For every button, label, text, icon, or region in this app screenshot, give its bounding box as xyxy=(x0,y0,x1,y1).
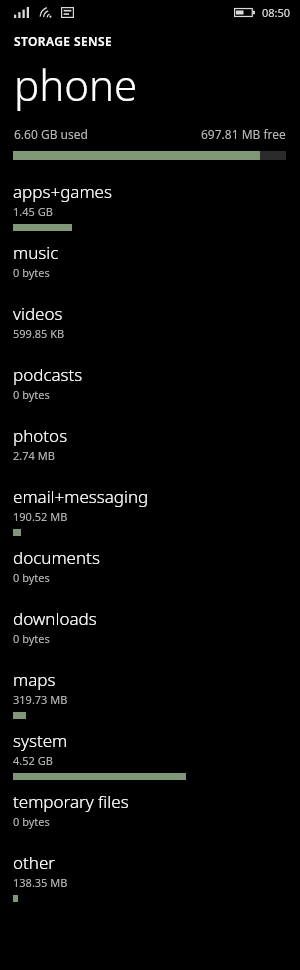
staticText: 08:50 xyxy=(262,5,291,20)
staticText: 2.74 MB xyxy=(13,448,55,463)
button[interactable]: email+messaging xyxy=(0,482,300,543)
staticText: 0 bytes xyxy=(13,265,50,280)
button[interactable]: documents xyxy=(0,543,300,604)
button[interactable]: videos xyxy=(0,299,300,360)
button[interactable]: music xyxy=(0,238,300,299)
button[interactable]: system xyxy=(0,726,300,787)
staticText: STORAGE SENSE xyxy=(14,33,113,49)
staticText: documents xyxy=(13,546,100,569)
staticText: 190.52 MB xyxy=(13,509,68,524)
button[interactable]: photos xyxy=(0,421,300,482)
staticText: photos xyxy=(13,424,68,447)
staticText: 0 bytes xyxy=(13,570,50,585)
staticText: 1.45 GB xyxy=(13,204,53,219)
staticText: other xyxy=(13,851,56,874)
button[interactable]: other xyxy=(0,848,300,909)
staticText: system xyxy=(13,729,68,752)
staticText: maps xyxy=(13,668,56,691)
button[interactable]: downloads xyxy=(0,604,300,665)
staticText: email+messaging xyxy=(13,485,149,508)
staticText: downloads xyxy=(13,607,97,630)
staticText: 599.85 KB xyxy=(13,326,65,341)
staticText: videos xyxy=(13,302,63,325)
button[interactable]: podcasts xyxy=(0,360,300,421)
staticText: 4.52 GB xyxy=(13,753,53,768)
staticText: podcasts xyxy=(13,363,83,386)
staticText: apps+games xyxy=(13,180,112,203)
staticText: 6.60 GB used xyxy=(14,126,88,142)
staticText: temporary files xyxy=(13,790,129,813)
staticText: 138.35 MB xyxy=(13,875,68,890)
staticText: phone xyxy=(14,56,138,113)
button[interactable]: temporary files xyxy=(0,787,300,848)
staticText: 0 bytes xyxy=(13,631,50,646)
button[interactable]: apps+games xyxy=(0,177,300,238)
staticText: 0 bytes xyxy=(13,814,50,829)
button[interactable]: maps xyxy=(0,665,300,726)
staticText: 697.81 MB free xyxy=(201,126,286,142)
staticText: 319.73 MB xyxy=(13,692,68,707)
staticText: music xyxy=(13,241,59,264)
staticText: 0 bytes xyxy=(13,387,50,402)
